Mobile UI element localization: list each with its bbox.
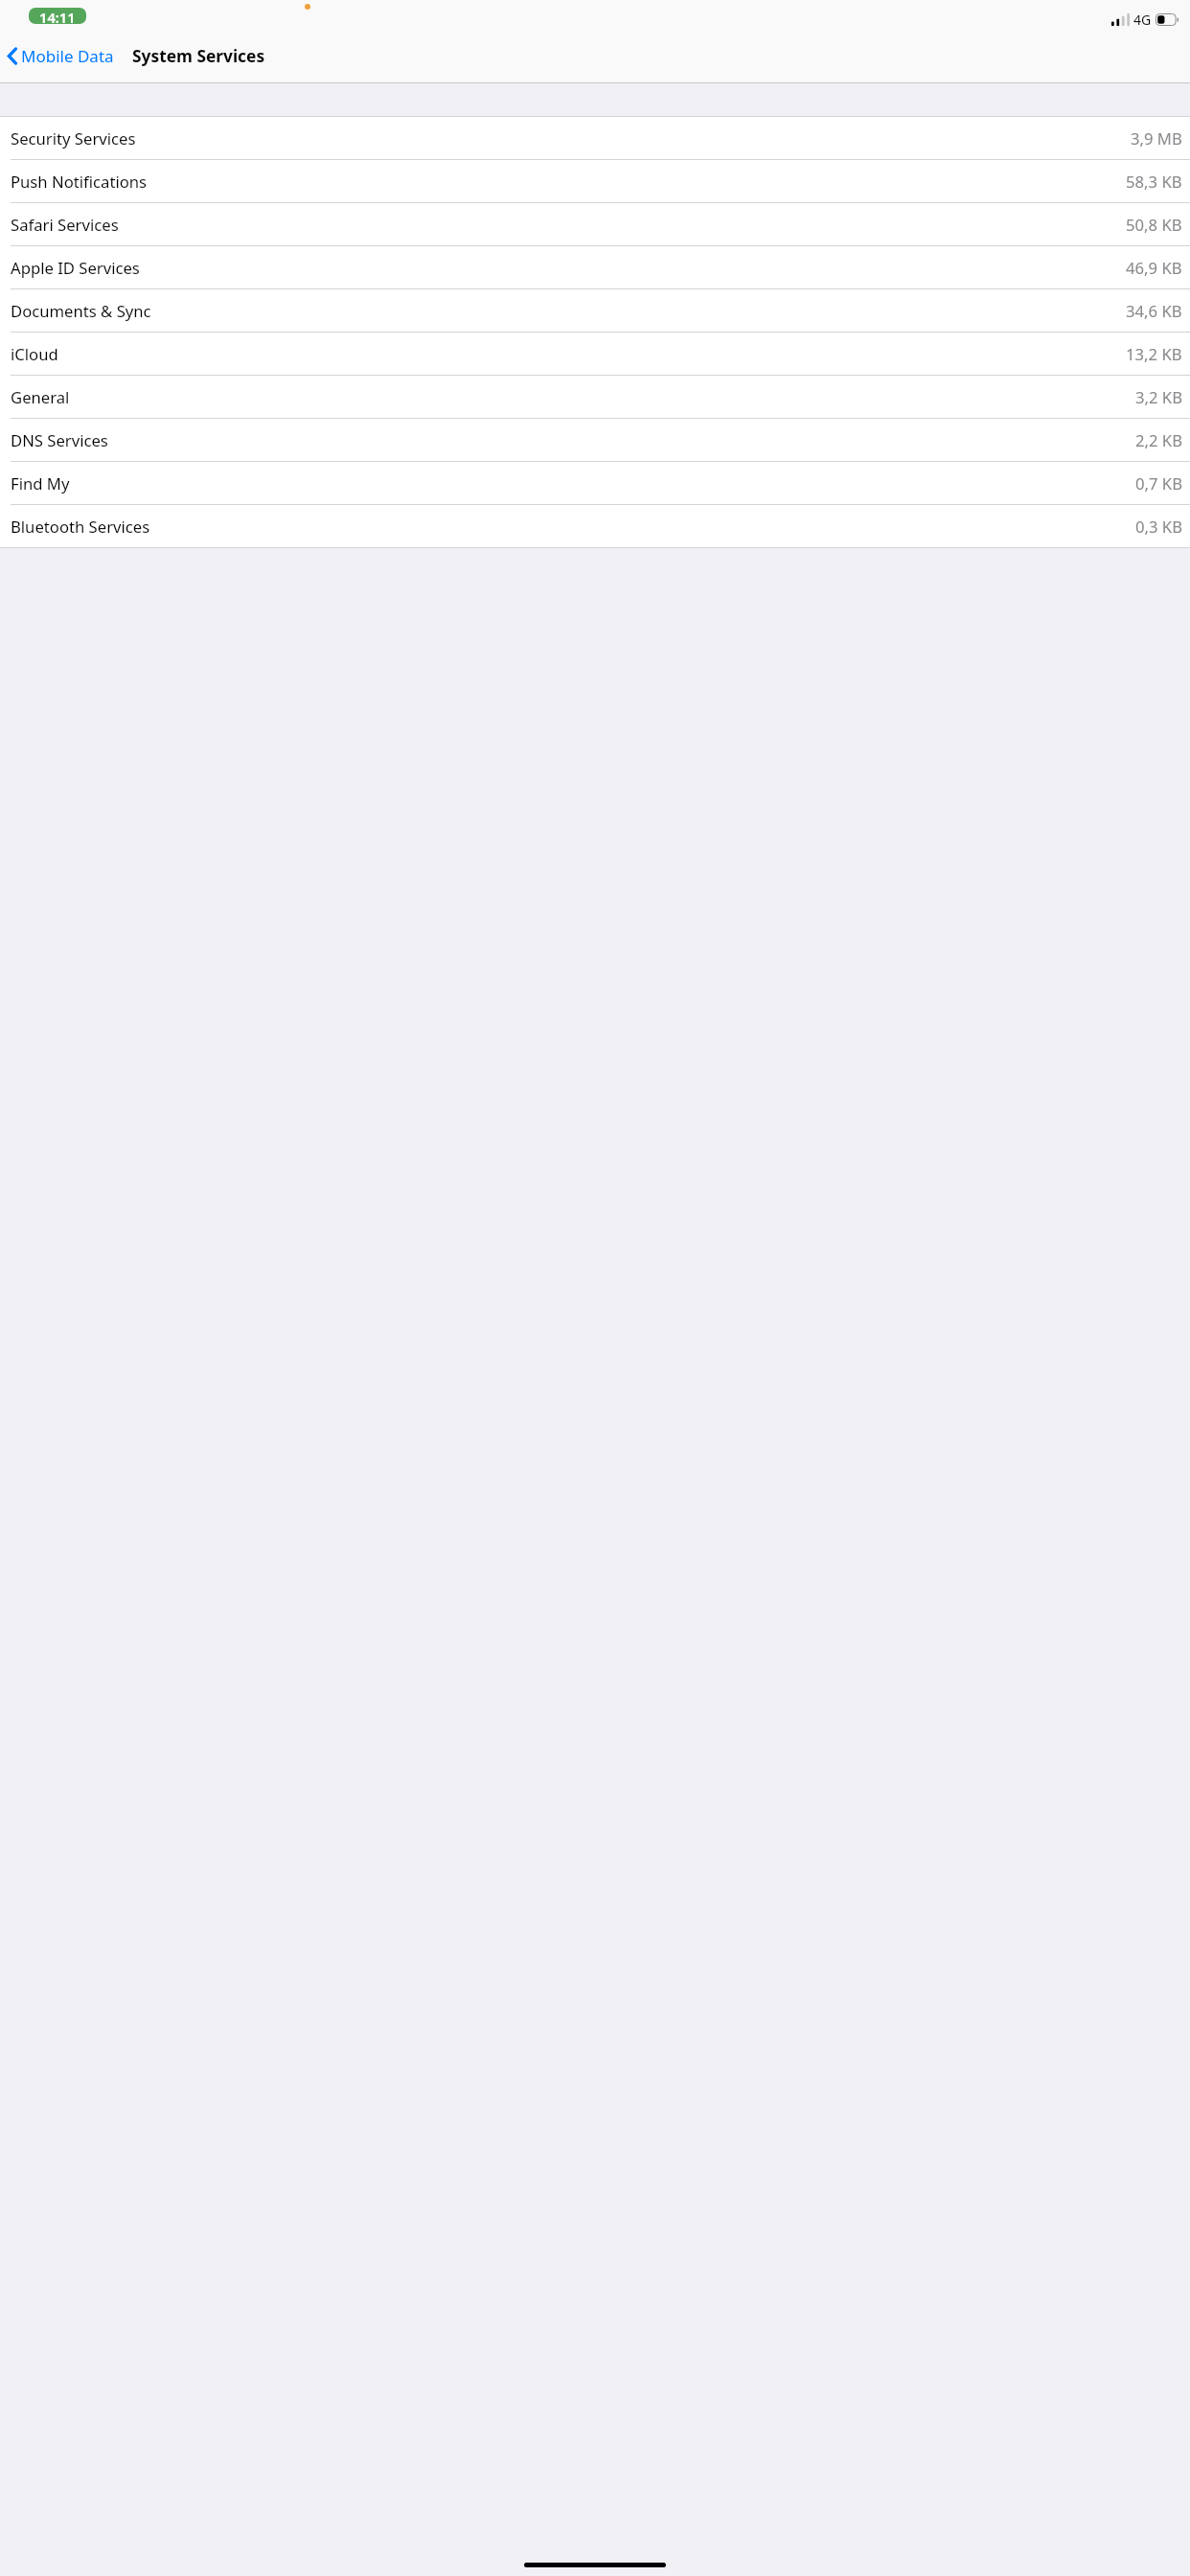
staticText: 0,3 KB [1135,516,1182,538]
button[interactable]: Bluetooth Services [0,505,1190,547]
staticText: Find My [11,472,70,494]
staticText: Push Notifications [11,171,148,193]
staticText: Bluetooth Services [11,516,150,538]
button[interactable]: Security Services [0,117,1190,159]
button[interactable]: Documents & Sync [0,289,1190,332]
button[interactable]: DNS Services [0,419,1190,461]
staticText: iCloud [11,343,58,365]
staticText: DNS Services [11,429,108,451]
staticText: 13,2 KB [1126,343,1182,365]
button[interactable]: iCloud [0,333,1190,375]
staticText: General [11,386,70,408]
other: Home [524,2563,666,2567]
staticText: Apple ID Services [11,257,140,279]
staticText: 3,9 MB [1131,127,1182,149]
staticText: 46,9 KB [1126,257,1182,279]
staticText: 58,3 KB [1126,171,1182,193]
staticText: System Services [132,44,265,67]
button[interactable]: Safari Services [0,203,1190,245]
button[interactable]: General [0,376,1190,418]
staticText: 0,7 KB [1135,472,1182,494]
staticText: 4G [1133,11,1152,29]
staticText: 14:11 [39,8,76,24]
staticText: 50,8 KB [1126,214,1182,236]
button[interactable]: Mobile Data [0,28,119,83]
staticText: Documents & Sync [11,300,151,322]
staticText: Security Services [11,127,136,149]
staticText: Mobile Data [21,45,114,67]
staticText: 34,6 KB [1126,300,1182,322]
button[interactable]: Find My [0,462,1190,504]
staticText: 2,2 KB [1135,429,1182,451]
button[interactable]: Apple ID Services [0,246,1190,288]
button[interactable]: Push Notifications [0,160,1190,202]
staticText: 3,2 KB [1135,386,1182,408]
staticText: Safari Services [11,214,119,236]
